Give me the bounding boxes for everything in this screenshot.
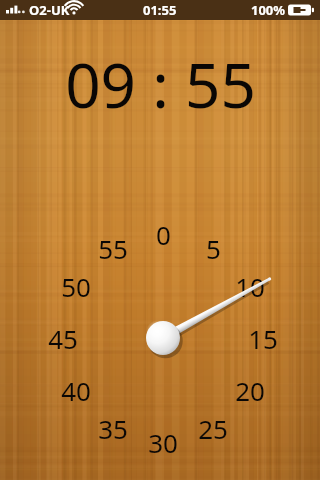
- button[interactable]: 20: [224, 372, 276, 408]
- other: Timer dial: [0, 0, 320, 480]
- staticText: O2-UK: [29, 1, 70, 19]
- button[interactable]: 45: [37, 320, 89, 356]
- staticText: 09 : 55: [65, 42, 256, 122]
- staticText: 45: [48, 321, 78, 356]
- button[interactable]: 10: [224, 268, 276, 304]
- button[interactable]: 50: [50, 268, 102, 304]
- staticText: 5: [206, 231, 221, 266]
- button[interactable]: 35: [87, 410, 139, 446]
- staticText: 50: [61, 269, 91, 304]
- staticText: 0: [156, 217, 171, 252]
- button[interactable]: 15: [237, 320, 289, 356]
- staticText: 20: [235, 373, 265, 408]
- button[interactable]: 09 : 55: [0, 42, 320, 122]
- button[interactable]: 40: [50, 372, 102, 408]
- staticText: 35: [98, 411, 128, 446]
- staticText: 15: [248, 321, 278, 356]
- staticText: 55: [98, 231, 128, 266]
- button[interactable]: 0: [137, 216, 189, 252]
- staticText: 30: [148, 425, 178, 460]
- staticText: 40: [61, 373, 91, 408]
- button[interactable]: 25: [187, 410, 239, 446]
- staticText: 100%: [251, 1, 286, 19]
- staticText: 01:55: [143, 1, 177, 19]
- staticText: 25: [198, 411, 228, 446]
- button[interactable]: 30: [137, 424, 189, 460]
- staticText: 10: [235, 269, 265, 304]
- button[interactable]: 5: [187, 230, 239, 266]
- button[interactable]: 55: [87, 230, 139, 266]
